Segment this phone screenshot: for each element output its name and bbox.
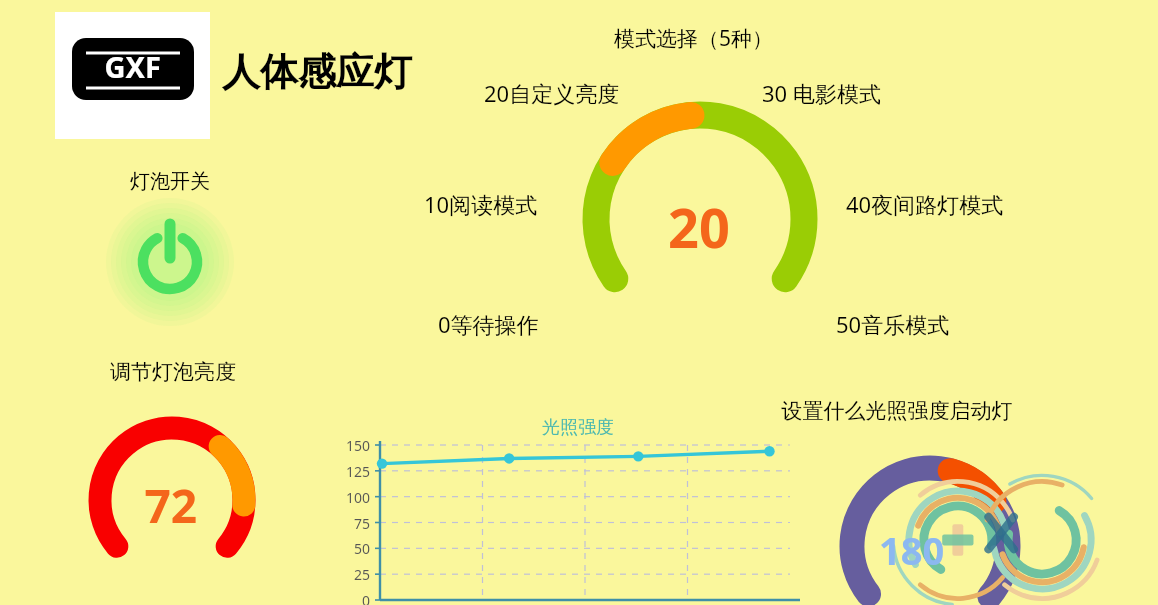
- button[interactable]: Light threshold gauge: [852, 468, 1008, 605]
- button[interactable]: 10 reading mode: [420, 181, 550, 211]
- button[interactable]: 50 music mode: [832, 301, 968, 331]
- button[interactable]: 0 idle: [434, 301, 564, 331]
- button[interactable]: 20 custom brightness mode: [478, 70, 634, 100]
- button[interactable]: Brightness gauge: [100, 428, 244, 572]
- button[interactable]: GXF logo: [55, 12, 210, 139]
- button[interactable]: 40 night street light mode: [842, 181, 1018, 211]
- button[interactable]: Mode selector gauge: [596, 115, 804, 323]
- button[interactable]: 30 movie mode: [756, 70, 904, 100]
- button[interactable]: Light bulb power toggle: [118, 210, 222, 314]
